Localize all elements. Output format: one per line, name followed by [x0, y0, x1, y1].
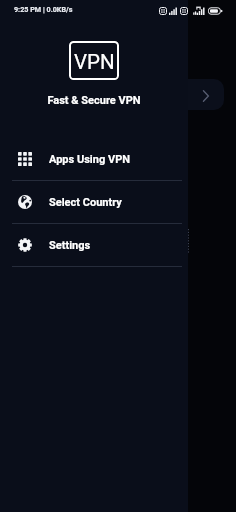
button[interactable]: Select Country — [0, 181, 188, 223]
staticText: Apps Using VPN — [49, 153, 131, 166]
staticText: Select Country — [49, 196, 122, 209]
staticText: Settings — [49, 239, 91, 252]
staticText: VPN — [74, 50, 115, 74]
button[interactable]: Open connection details — [188, 79, 224, 110]
staticText: Fast & Secure VPN — [47, 94, 141, 107]
button[interactable]: Settings — [0, 224, 188, 266]
button[interactable]: Apps Using VPN — [0, 138, 188, 180]
staticText: 9:25 PM | 0.0KB/s — [14, 5, 73, 13]
